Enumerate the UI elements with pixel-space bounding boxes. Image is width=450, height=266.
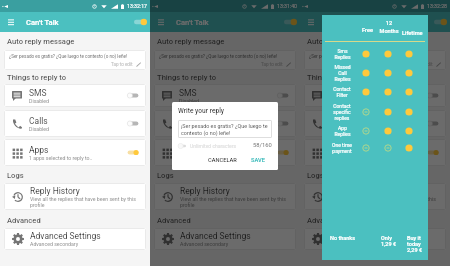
- staticText: Things to reply to: [157, 73, 216, 82]
- staticText: Advanced: [157, 216, 191, 225]
- staticText: Disabled: [179, 126, 200, 132]
- button[interactable]: Apps: [4, 139, 146, 166]
- button[interactable]: Advanced Settings: [4, 228, 146, 250]
- staticText: Write your reply: [178, 107, 225, 115]
- staticText: 13:32:17: [127, 3, 148, 9]
- staticText: SMS: [29, 88, 47, 98]
- staticText: Things to reply to: [7, 73, 66, 82]
- staticText: Apps: [329, 145, 349, 155]
- button[interactable]: ¿Ser pesado es gratis? ¿Que luego te con…: [304, 50, 446, 70]
- staticText: ¿Ser pesado es gratis? ¿Que luego te con…: [9, 54, 128, 59]
- button[interactable]: Toggle auto reply profile: [131, 12, 150, 32]
- button[interactable]: Advanced Settings: [154, 228, 296, 250]
- button[interactable]: Unlimited characters: [178, 143, 187, 149]
- button[interactable]: SAVE: [248, 155, 268, 166]
- staticText: ¡Ser pesado es gratis? ¿Que luego te con…: [181, 123, 269, 136]
- staticText: SMS: [179, 88, 197, 98]
- staticText: ¿Ser pesado es gratis? ¿Que luego te con…: [159, 54, 278, 59]
- staticText: Advanced secondary: [30, 241, 79, 247]
- staticText: Advanced Settings: [30, 231, 101, 241]
- staticText: Apps: [179, 145, 199, 155]
- button[interactable]: Apps: [304, 139, 446, 166]
- staticText: App Replies: [334, 125, 351, 137]
- button[interactable]: Calls: [154, 110, 296, 137]
- staticText: Disabled: [29, 98, 50, 104]
- button[interactable]: Buy it today 2,29 €: [407, 235, 429, 253]
- staticText: Contact specific replies: [333, 103, 351, 121]
- staticText: Calls: [329, 116, 348, 126]
- staticText: Lifetime: [402, 30, 423, 37]
- staticText: Free: [362, 27, 373, 34]
- button[interactable]: Calls: [4, 110, 146, 137]
- staticText: Apps: [29, 145, 49, 155]
- staticText: Auto reply message: [157, 37, 225, 46]
- button[interactable]: Only 1,29 €: [381, 235, 403, 247]
- staticText: Logs: [157, 171, 174, 180]
- staticText: View all the replies that have been sent…: [30, 196, 140, 208]
- button[interactable]: Reply History: [154, 183, 296, 210]
- button[interactable]: SMS: [4, 84, 146, 107]
- staticText: Can't Talk: [26, 18, 59, 27]
- staticText: SMS: [329, 88, 347, 98]
- button[interactable]: Open navigation menu: [300, 12, 321, 32]
- staticText: 1 apps selected to reply to..: [29, 155, 93, 161]
- staticText: Calls: [179, 116, 198, 126]
- staticText: 12 Months: [379, 20, 399, 35]
- button[interactable]: Toggle auto reply profile: [431, 12, 450, 32]
- staticText: One time payment: [332, 142, 352, 154]
- staticText: View all the replies that have been sent…: [330, 196, 440, 208]
- staticText: Unlimited characters: [190, 143, 236, 149]
- staticText: 1 apps selected to reply to..: [179, 155, 243, 161]
- staticText: Calls: [29, 116, 48, 126]
- staticText: 58/160: [253, 142, 272, 149]
- button[interactable]: Toggle auto reply profile: [281, 12, 300, 32]
- button[interactable]: Apps: [154, 139, 296, 166]
- staticText: Reply History: [30, 186, 80, 196]
- staticText: ¿Ser pesado es gratis? ¿Que luego te con…: [309, 54, 428, 59]
- button[interactable]: No thanks: [330, 235, 356, 241]
- button[interactable]: Advanced Settings: [304, 228, 446, 250]
- button[interactable]: Open navigation menu: [150, 12, 171, 32]
- staticText: Auto reply message: [7, 37, 75, 46]
- button[interactable]: ¿Ser pesado es gratis? ¿Que luego te con…: [4, 50, 146, 70]
- button[interactable]: SMS: [154, 84, 296, 107]
- staticText: Disabled: [329, 126, 350, 132]
- staticText: Tap to edit: [261, 62, 283, 67]
- staticText: 13:31:40: [277, 3, 298, 9]
- staticText: Sms Replies: [334, 48, 351, 60]
- staticText: Advanced Settings: [330, 231, 401, 241]
- staticText: Missed Call Replies: [334, 64, 351, 82]
- staticText: Tap to edit: [111, 62, 133, 67]
- staticText: SAVE: [251, 157, 265, 164]
- staticText: Things to reply to: [307, 73, 366, 82]
- staticText: Disabled: [179, 98, 200, 104]
- staticText: Can't Talk: [176, 18, 209, 27]
- staticText: Contact Filter: [333, 86, 351, 98]
- button[interactable]: ¿Ser pesado es gratis? ¿Que luego te con…: [154, 50, 296, 70]
- staticText: Advanced Settings: [180, 231, 251, 241]
- button[interactable]: SMS: [304, 84, 446, 107]
- staticText: Tap to edit: [411, 62, 433, 67]
- staticText: 13:32:28: [427, 3, 448, 9]
- staticText: Advanced secondary: [180, 241, 229, 247]
- staticText: Advanced: [307, 216, 341, 225]
- button[interactable]: CANCELAR: [205, 155, 240, 166]
- staticText: Logs: [7, 171, 24, 180]
- staticText: View all the replies that have been sent…: [180, 196, 290, 208]
- staticText: Auto reply message: [307, 37, 375, 46]
- button[interactable]: Calls: [304, 110, 446, 137]
- button[interactable]: Reply History: [304, 183, 446, 210]
- staticText: Advanced: [7, 216, 41, 225]
- staticText: CANCELAR: [208, 157, 237, 164]
- staticText: Reply History: [180, 186, 230, 196]
- button[interactable]: Open navigation menu: [0, 12, 21, 32]
- staticText: Logs: [307, 171, 324, 180]
- button[interactable]: Reply History: [4, 183, 146, 210]
- staticText: Disabled: [29, 126, 50, 132]
